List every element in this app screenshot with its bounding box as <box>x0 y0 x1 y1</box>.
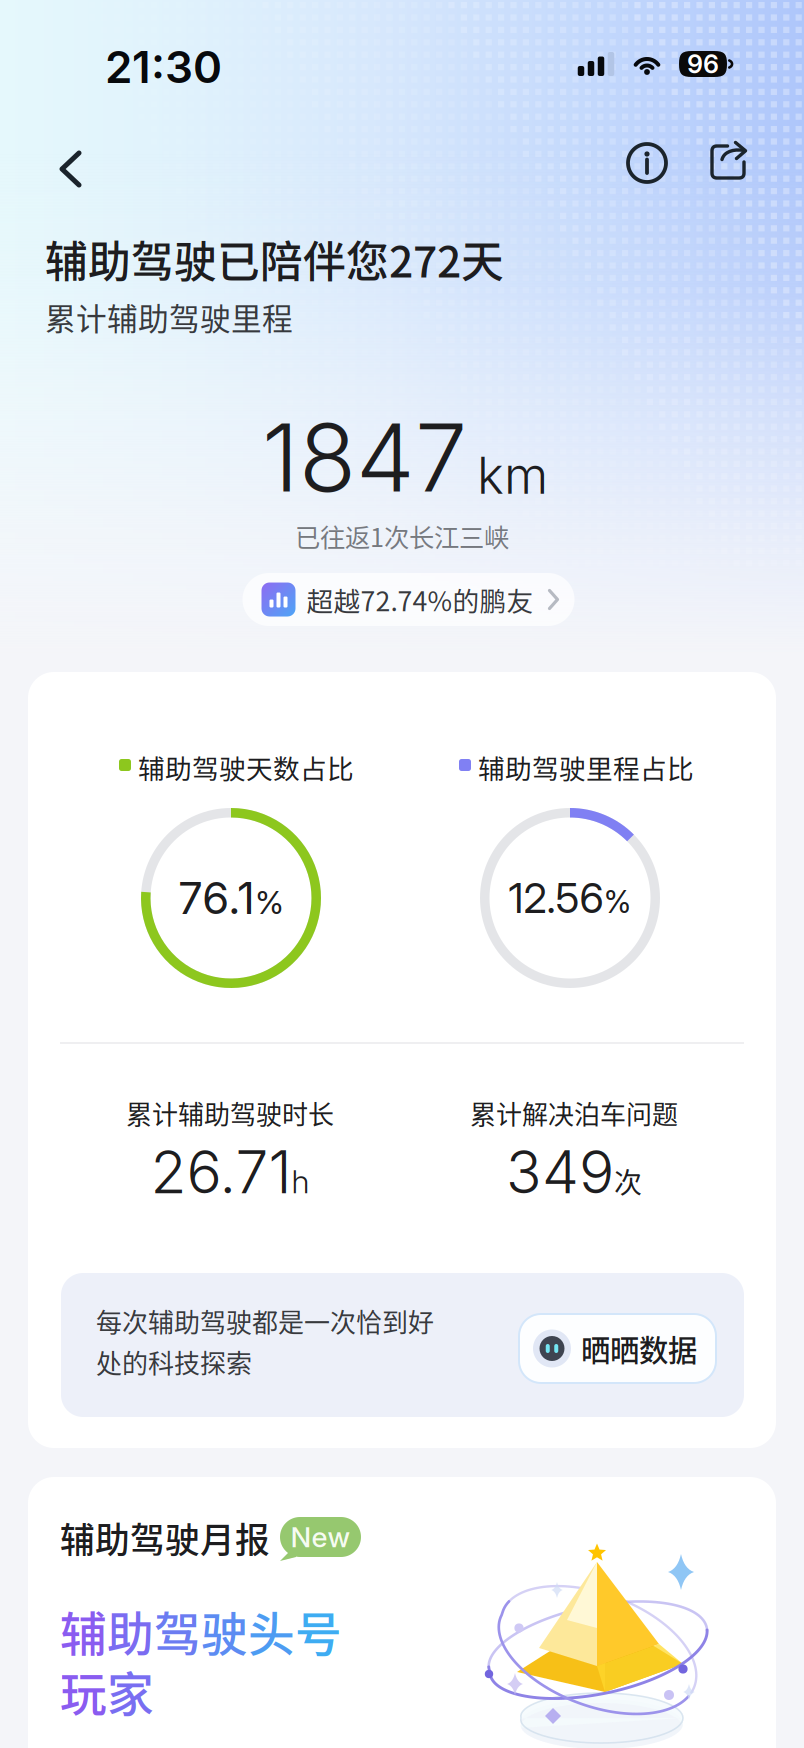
staticText: 头 <box>248 1597 295 1665</box>
staticText: 1847 <box>262 401 467 514</box>
staticText: 号 <box>295 1597 342 1665</box>
staticText: 玩 <box>60 1657 107 1725</box>
staticText: 次 <box>614 1161 642 1201</box>
staticText: 辅助驾驶天数占比 <box>138 748 354 786</box>
staticText: 96 <box>687 49 719 79</box>
staticText: 驶 <box>201 1597 248 1665</box>
staticText: 76.1 <box>178 871 255 925</box>
button[interactable]: Share <box>708 142 748 182</box>
staticText: km <box>477 445 548 506</box>
staticText: 处的科技探索 <box>96 1343 252 1381</box>
staticText: 12.56 <box>508 873 603 923</box>
staticText: 21:30 <box>105 40 222 94</box>
staticText: 辅助驾驶里程占比 <box>478 748 694 786</box>
staticText: 辅助驾驶月报 <box>60 1513 270 1563</box>
staticText: 累计辅助驾驶里程 <box>45 295 293 339</box>
staticText: 349 <box>506 1136 614 1207</box>
staticText: % <box>255 883 284 922</box>
button[interactable]: 超越72.74%的鹏友 <box>242 573 574 626</box>
staticText: 超越72.74%的鹏友 <box>306 580 533 619</box>
staticText: 累计解决泊车问题 <box>470 1094 678 1132</box>
button[interactable]: Information <box>624 140 670 186</box>
button[interactable]: 晒晒数据 <box>519 1314 716 1383</box>
staticText: 26.71 <box>150 1136 291 1207</box>
staticText: h <box>291 1162 309 1201</box>
staticText: 助 <box>107 1597 154 1665</box>
staticText: % <box>603 883 631 920</box>
staticText: 辅 <box>60 1597 107 1665</box>
button[interactable]: Back <box>48 146 94 192</box>
staticText: 已往返1次长江三峡 <box>295 518 509 554</box>
staticText: 家 <box>107 1657 154 1725</box>
staticText: 每次辅助驾驶都是一次恰到好 <box>96 1302 434 1340</box>
staticText: 辅助驾驶已陪伴您272天 <box>45 228 504 290</box>
staticText: New <box>290 1520 350 1554</box>
staticText: 驾 <box>154 1597 201 1665</box>
staticText: 晒晒数据 <box>581 1327 697 1370</box>
staticText: 累计辅助驾驶时长 <box>126 1094 334 1132</box>
